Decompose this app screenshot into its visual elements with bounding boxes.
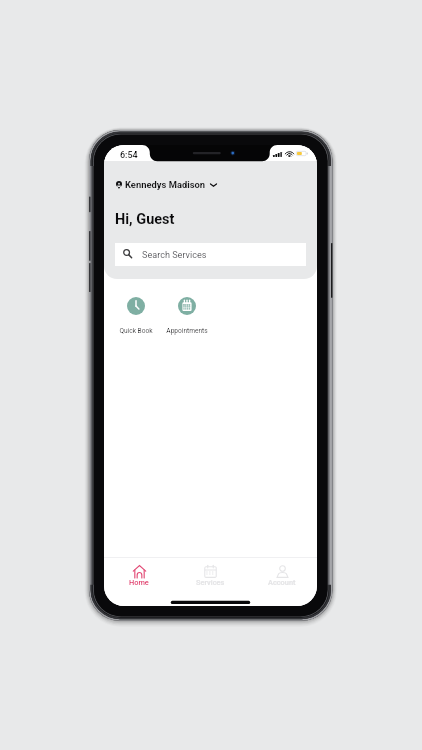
button[interactable]: Search Services — [115, 243, 306, 266]
staticText: Home — [129, 578, 149, 587]
other: Quick Book — [127, 297, 145, 315]
staticText: 6:54 — [120, 150, 138, 161]
button[interactable]: Kennedys Madison — [114, 177, 219, 192]
button[interactable]: Appointments — [161, 297, 213, 335]
button[interactable]: Account — [256, 558, 308, 589]
staticText: Kennedys Madison — [125, 179, 206, 190]
staticText: Account — [268, 578, 296, 587]
staticText: Search Services — [142, 250, 207, 261]
staticText: Appointments — [166, 327, 208, 335]
button[interactable]: Quick Book — [110, 297, 162, 335]
staticText: Hi, Guest — [115, 211, 175, 228]
other: Appointments — [178, 297, 196, 315]
staticText: Services — [196, 578, 225, 587]
button[interactable]: Services — [184, 558, 236, 589]
button[interactable]: Home — [113, 558, 165, 589]
staticText: Quick Book — [119, 327, 153, 335]
